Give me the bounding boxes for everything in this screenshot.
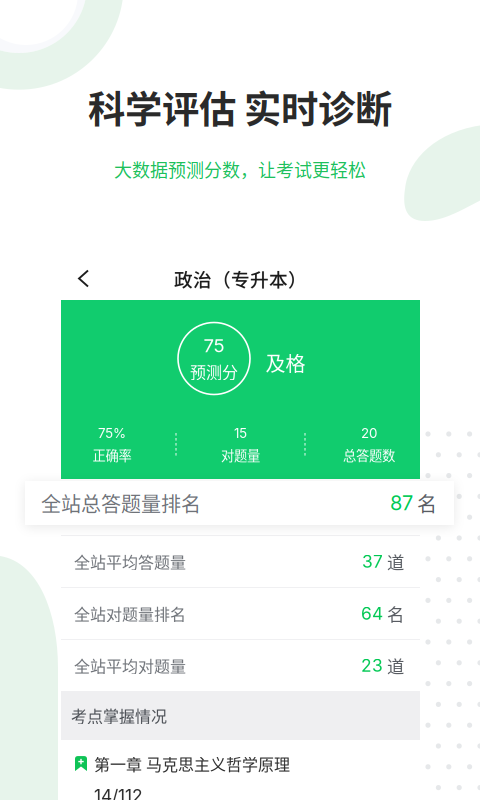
staticText: 道 [383, 653, 404, 678]
staticText: 23 [361, 655, 383, 676]
staticText: 全站总答题量排名 [41, 488, 201, 517]
staticText: 全站对题量排名 [74, 602, 186, 625]
staticText: 全站平均对题量 [74, 654, 186, 677]
staticText: 总答题数 [343, 445, 395, 464]
staticText: 14/112 [94, 785, 143, 800]
staticText: 全站总答题量排名 [74, 495, 202, 519]
staticText: 全站平均答题量 [74, 550, 186, 573]
staticText: 正确率 [92, 445, 131, 464]
staticText: 名 [383, 601, 404, 626]
button[interactable]: 全站对题量排名 [61, 588, 420, 639]
staticText: 名 [383, 494, 404, 520]
staticText: 考点掌握情况 [71, 704, 167, 727]
staticText: 及格 [265, 348, 305, 377]
staticText: 75% [98, 425, 126, 441]
button[interactable]: 全站总答题量排名 [61, 479, 420, 535]
staticText: 第一章 马克思主义哲学原理 [94, 752, 290, 775]
button[interactable]: 全站总答题量排名 [25, 481, 454, 525]
staticText: 预测分 [190, 360, 238, 383]
button[interactable]: 全站平均答题量 [61, 536, 420, 587]
staticText: 政治（专升本） [174, 265, 307, 292]
staticText: 87 [390, 491, 413, 515]
staticText: 64 [361, 603, 383, 624]
button[interactable]: 第一章 马克思主义哲学原理 [61, 740, 420, 800]
staticText: 科学评估 实时诊断 [88, 80, 392, 134]
staticText: 大数据预测分数，让考试更轻松 [114, 156, 366, 182]
staticText: 对题量 [221, 445, 260, 464]
button[interactable]: 全站平均对题量 [61, 640, 420, 691]
staticText: 37 [362, 551, 383, 572]
staticText: 15 [234, 425, 247, 441]
button[interactable]: Back [69, 260, 98, 296]
staticText: 道 [383, 549, 404, 574]
staticText: 20 [361, 425, 377, 441]
staticText: 75 [203, 334, 224, 357]
staticText: 名 [413, 488, 437, 517]
